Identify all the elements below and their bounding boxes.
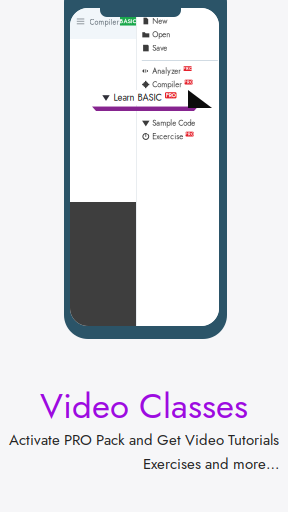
staticText: Analyzer <box>152 65 181 77</box>
button[interactable]: Sample Code <box>142 116 220 130</box>
button[interactable]: Analyzer <box>142 64 220 78</box>
staticText: Open <box>152 29 170 40</box>
staticText: Save <box>152 42 167 54</box>
staticText: Exercises and more… <box>143 453 279 475</box>
button[interactable]: Excercise <box>142 130 220 143</box>
staticText: PRO <box>183 65 192 72</box>
staticText: Sample Code <box>152 117 195 129</box>
button[interactable]: Compiler <box>142 78 220 91</box>
staticText: New <box>152 15 167 27</box>
staticText: Activate PRO Pack and Get Video Tutorial… <box>9 429 279 451</box>
button[interactable]: New <box>142 14 220 28</box>
staticText: PRO <box>185 131 194 137</box>
button[interactable]: Learn BASIC <box>97 90 188 105</box>
staticText: Compiler <box>152 79 182 90</box>
button[interactable]: Save <box>142 41 220 55</box>
staticText: Video Classes <box>40 381 248 431</box>
staticText: Compilerz <box>90 17 123 27</box>
staticText: Excercise <box>152 131 183 142</box>
staticText: PRO <box>184 79 193 85</box>
button[interactable]: Menu <box>77 18 84 24</box>
staticText: BASIC <box>119 17 136 25</box>
staticText: Learn BASIC <box>113 91 161 104</box>
staticText: PRO <box>166 91 176 99</box>
button[interactable]: Open <box>142 28 220 41</box>
